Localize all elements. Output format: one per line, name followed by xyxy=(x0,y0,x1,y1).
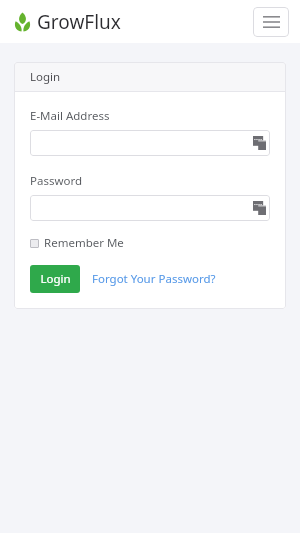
button[interactable]: Menu xyxy=(253,7,289,37)
button[interactable]: Forgot Your Password? xyxy=(92,271,216,287)
staticText: Forgot Your Password? xyxy=(92,271,216,287)
staticText: Remember Me xyxy=(44,235,124,251)
button[interactable] xyxy=(30,130,270,156)
button[interactable]: GrowFlux xyxy=(14,9,121,35)
staticText: E-Mail Address xyxy=(30,108,110,124)
button[interactable]: Login xyxy=(30,265,80,293)
button[interactable] xyxy=(30,195,270,221)
staticText: Login xyxy=(30,69,61,85)
button[interactable]: Remember Me xyxy=(30,235,124,251)
staticText: GrowFlux xyxy=(37,9,121,35)
staticText: Login xyxy=(40,271,71,287)
staticText: Password xyxy=(30,173,83,189)
